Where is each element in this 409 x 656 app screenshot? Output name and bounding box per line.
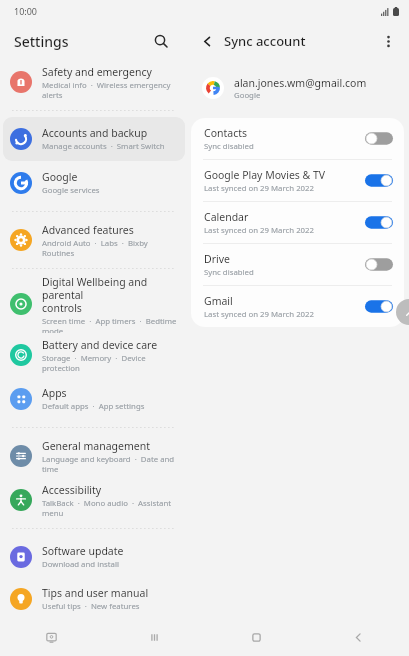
button[interactable]: Home (205, 618, 307, 656)
staticText: Contacts (204, 126, 248, 140)
staticText: Calendar (204, 210, 249, 224)
staticText: Accounts and backup (42, 126, 148, 140)
staticText: Apps (42, 386, 67, 400)
staticText: Digital Wellbeing and parental controls (42, 275, 179, 315)
staticText: Medical info · Wireless emergency alerts (42, 80, 179, 100)
button[interactable]: Contacts sync toggle (365, 131, 393, 146)
button[interactable]: Advanced features (3, 218, 185, 262)
staticText: Sync account (224, 32, 306, 50)
staticText: Download and install (42, 559, 119, 570)
staticText: Google services (42, 185, 100, 196)
staticText: Drive (204, 252, 230, 266)
staticText: Sync disabled (204, 141, 254, 152)
staticText: Accessibility (42, 483, 102, 497)
button[interactable]: Gmail (191, 286, 404, 327)
button[interactable]: Screenshot (0, 618, 103, 656)
button[interactable]: Google Play Movies & TV sync toggle (365, 173, 393, 188)
staticText: Screen time · App timers · Bedtime mode (42, 316, 177, 333)
button[interactable]: Calendar sync toggle (365, 215, 393, 230)
staticText: Gmail (204, 294, 233, 308)
staticText: Manage accounts · Smart Switch (42, 141, 165, 152)
button[interactable]: Contacts (191, 118, 404, 159)
button[interactable]: Tips and user manual (3, 579, 185, 618)
button[interactable]: Battery and device care (3, 333, 185, 377)
staticText: General management (42, 439, 150, 453)
staticText: Last synced on 29 March 2022 (204, 309, 314, 320)
button[interactable]: Drive sync toggle (365, 257, 393, 272)
staticText: alan.jones.wm@gmail.com (234, 76, 367, 90)
button[interactable]: Apps (3, 377, 185, 421)
staticText: Google (234, 90, 261, 101)
button[interactable]: Safety and emergency (3, 60, 185, 104)
staticText: Google Play Movies & TV (204, 168, 326, 182)
staticText: Battery and device care (42, 338, 158, 352)
staticText: Advanced features (42, 223, 134, 237)
button[interactable]: Digital Wellbeing and parental controls (3, 275, 185, 333)
button[interactable]: Google Play Movies & TV (191, 160, 404, 201)
staticText: Storage · Memory · Device protection (42, 353, 179, 373)
staticText: Useful tips · New features (42, 601, 140, 612)
button[interactable]: Back (307, 618, 409, 656)
staticText: Tips and user manual (42, 586, 149, 600)
button[interactable]: General management (3, 434, 185, 478)
button[interactable]: Recent apps (103, 618, 205, 656)
button[interactable]: Gmail sync toggle (365, 299, 393, 314)
staticText: TalkBack · Mono audio · Assistant menu (42, 498, 179, 518)
button[interactable]: Software update (3, 535, 185, 579)
staticText: Language and keyboard · Date and time (42, 454, 179, 474)
button[interactable]: Search (148, 28, 174, 54)
staticText: Safety and emergency (42, 65, 152, 79)
staticText: Google (42, 170, 78, 184)
staticText: Sync disabled (204, 267, 254, 278)
button[interactable]: Calendar (191, 202, 404, 243)
staticText: Settings (14, 32, 69, 51)
button[interactable]: Drive (191, 244, 404, 285)
button[interactable]: More options (375, 28, 401, 54)
button[interactable]: Accounts and backup (3, 117, 185, 161)
button[interactable]: alan.jones.wm@gmail.com (188, 68, 409, 108)
staticText: Default apps · App settings (42, 401, 145, 412)
staticText: Last synced on 29 March 2022 (204, 183, 314, 194)
button[interactable]: Edit (396, 299, 409, 325)
button[interactable]: Back (194, 28, 220, 54)
staticText: Android Auto · Labs · Bixby Routines (42, 238, 179, 258)
button[interactable]: Accessibility (3, 478, 185, 522)
staticText: Software update (42, 544, 124, 558)
staticText: Last synced on 29 March 2022 (204, 225, 314, 236)
button[interactable]: Google (3, 161, 185, 205)
staticText: 10:00 (14, 5, 38, 17)
